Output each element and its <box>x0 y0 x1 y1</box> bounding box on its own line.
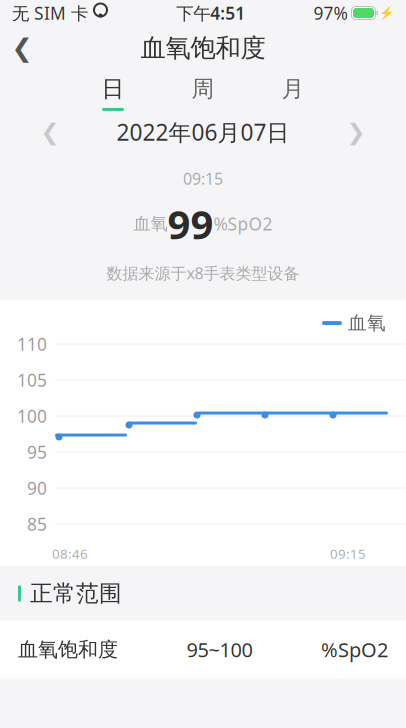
staticText: 95~100 <box>186 636 252 663</box>
staticText: ❮ <box>11 34 32 62</box>
staticText: 血氧 <box>348 312 386 334</box>
staticText: 数据来源于x8手表类型设备 <box>106 262 299 284</box>
staticText: %SpO2 <box>321 636 388 663</box>
staticText: %SpO2 <box>213 212 272 235</box>
staticText: 105 <box>17 368 47 391</box>
staticText: 08:46 <box>52 545 88 562</box>
staticText: 无 SIM 卡 <box>12 1 88 24</box>
staticText: 下午4:51 <box>176 1 245 24</box>
staticText: 日 <box>101 75 124 103</box>
staticText: 月 <box>281 75 304 103</box>
button[interactable]: 下一天 <box>334 114 378 150</box>
button[interactable]: 月 <box>248 75 338 111</box>
staticText: 110 <box>17 332 47 355</box>
staticText: 周 <box>191 75 214 103</box>
button[interactable]: 周 <box>158 75 248 111</box>
staticText: 血氧饱和度 <box>140 32 265 63</box>
staticText: 97% <box>313 1 347 24</box>
staticText: 85 <box>27 512 47 535</box>
staticText: ❯ <box>346 119 365 145</box>
staticText: 血氧饱和度 <box>18 637 118 662</box>
staticText: 血氧 <box>133 213 167 234</box>
button[interactable]: 上一天 <box>28 114 72 150</box>
button[interactable]: 返回 <box>0 26 44 70</box>
staticText: 95 <box>27 440 47 463</box>
staticText: 100 <box>17 404 47 427</box>
button[interactable]: 日 <box>68 75 158 111</box>
staticText: 正常范围 <box>30 580 122 607</box>
staticText: 09:15 <box>330 545 366 562</box>
staticText: 90 <box>27 476 47 499</box>
staticText: ⚡ <box>379 6 394 20</box>
staticText: 09:15 <box>183 168 223 189</box>
staticText: 2022年06月07日 <box>116 117 289 147</box>
staticText: ❮ <box>40 119 59 145</box>
staticText: 99 <box>167 197 213 250</box>
